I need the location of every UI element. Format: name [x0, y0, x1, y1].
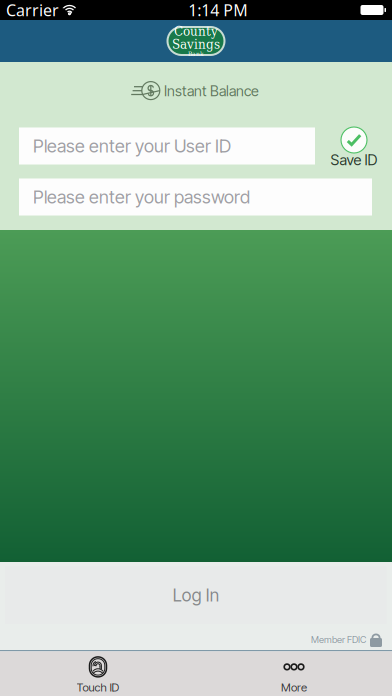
staticText: Bank	[188, 50, 204, 57]
button[interactable]: Save ID	[323, 127, 385, 167]
staticText: County	[174, 24, 218, 38]
staticText: Please enter your password	[33, 186, 250, 208]
staticText: 1:14 PM	[188, 0, 248, 21]
staticText: Carrier	[6, 0, 59, 21]
button[interactable]: Please enter your password	[19, 178, 372, 215]
staticText: Instant Balance	[164, 82, 259, 100]
staticText: Save ID	[330, 151, 377, 169]
staticText: Please enter your User ID	[33, 135, 231, 157]
staticText: More	[281, 680, 307, 694]
button[interactable]: Please enter your User ID	[19, 127, 315, 164]
button[interactable]: Log In	[5, 566, 386, 624]
staticText: Member FDIC	[311, 634, 366, 645]
button[interactable]: Instant Balance	[131, 78, 259, 104]
button[interactable]: More	[196, 651, 392, 696]
staticText: Savings	[172, 37, 220, 51]
staticText: Touch ID	[76, 680, 119, 694]
button[interactable]: Touch ID	[0, 651, 196, 696]
staticText: Log In	[173, 585, 219, 606]
